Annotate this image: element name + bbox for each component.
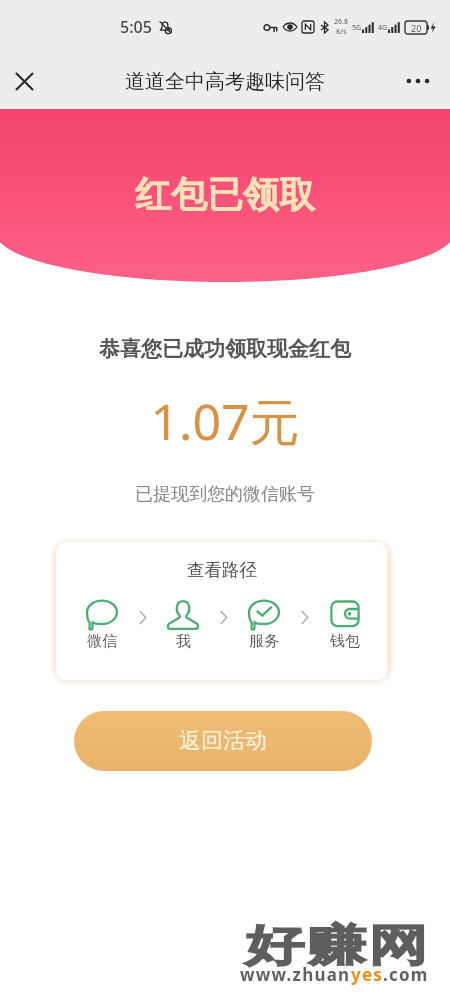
- staticText: 钱包: [330, 632, 360, 651]
- staticText: 查看路径: [187, 559, 257, 581]
- staticText: 返回活动: [179, 727, 267, 755]
- staticText: 微信: [87, 632, 117, 651]
- staticText: 26.8: [334, 17, 348, 27]
- staticText: 4G: [378, 23, 388, 33]
- button[interactable]: 返回活动: [74, 711, 372, 771]
- staticText: 1.07元: [0, 387, 450, 455]
- staticText: 5:05: [120, 16, 152, 38]
- staticText: 5G: [352, 23, 362, 33]
- staticText: .com: [383, 963, 429, 986]
- button[interactable]: Close: [2, 59, 46, 103]
- staticText: www.zhuan: [240, 963, 351, 986]
- staticText: 我: [176, 632, 191, 651]
- button[interactable]: More options: [396, 59, 440, 103]
- staticText: 服务: [249, 632, 279, 651]
- staticText: 好赚网: [244, 918, 429, 972]
- staticText: K/s: [336, 27, 347, 37]
- staticText: yes: [351, 963, 383, 986]
- staticText: 道道全中高考趣味问答: [125, 69, 325, 94]
- staticText: 已提现到您的微信账号: [0, 483, 450, 506]
- staticText: 20: [411, 22, 422, 34]
- staticText: 红包已领取: [0, 172, 450, 217]
- staticText: 恭喜您已成功领取现金红包: [0, 336, 450, 362]
